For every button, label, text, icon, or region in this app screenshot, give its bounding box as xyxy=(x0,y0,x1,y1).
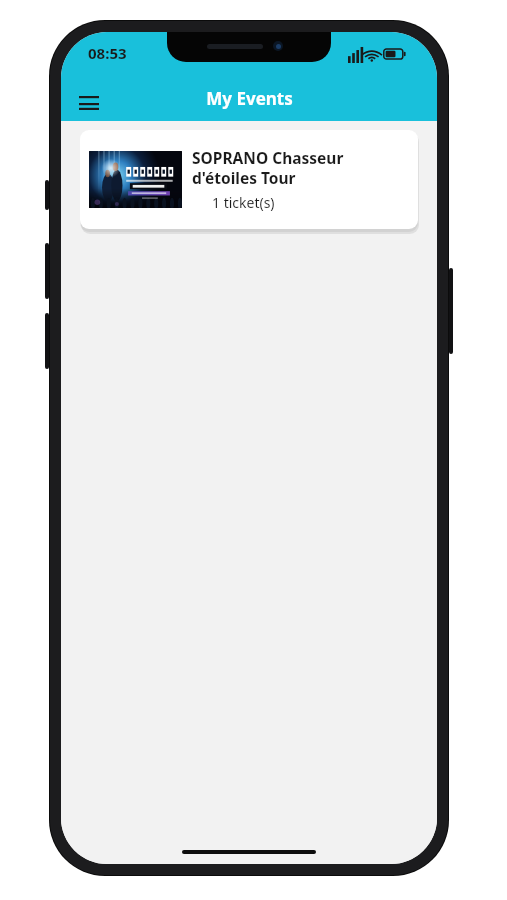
staticText: My Events xyxy=(206,87,293,110)
staticText: SOPRANO Chasseur d'étoiles Tour xyxy=(192,147,344,188)
button[interactable]: Open navigation menu xyxy=(72,86,106,120)
button[interactable]: SOPRANO Chasseur d'étoiles Tour xyxy=(80,130,418,229)
staticText: 08:53 xyxy=(88,43,127,63)
staticText: 1 ticket(s) xyxy=(212,193,275,212)
